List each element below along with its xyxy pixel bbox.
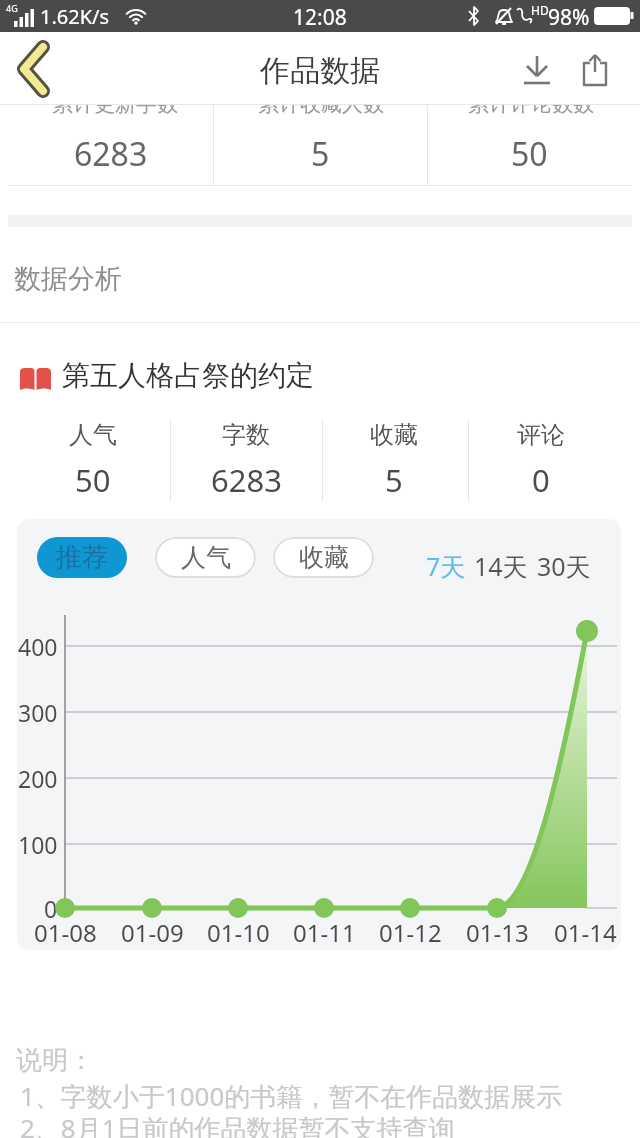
staticText: 6283: [74, 132, 148, 176]
staticText: 推荐: [56, 541, 108, 574]
staticText: 01-09: [121, 916, 184, 944]
staticText: 200: [18, 763, 58, 793]
staticText: 说明：: [16, 1044, 94, 1077]
staticText: 作品数据: [260, 52, 380, 90]
staticText: 12:08: [293, 3, 347, 32]
staticText: 2、8月1日前的作品数据暂不支持查询: [20, 1110, 455, 1138]
staticText: 累计评论数数: [468, 105, 594, 114]
staticText: 7天: [426, 549, 466, 583]
staticText: 数据分析: [14, 262, 122, 296]
staticText: 50: [75, 459, 111, 501]
staticText: 0: [44, 893, 58, 923]
staticText: 01-08: [34, 916, 97, 944]
button[interactable]: 人气: [155, 537, 256, 578]
staticText: 人气: [69, 420, 117, 450]
staticText: 评论: [517, 420, 565, 450]
staticText: 14天: [474, 549, 528, 583]
staticText: 累计收藏人数: [258, 105, 384, 114]
button[interactable]: 收藏: [273, 537, 374, 578]
button[interactable]: 推荐: [37, 537, 127, 578]
staticText: 0: [532, 459, 550, 501]
staticText: 98%: [548, 3, 590, 32]
staticText: 100: [18, 829, 58, 859]
staticText: 4G: [6, 2, 18, 14]
staticText: 5: [385, 459, 403, 501]
button[interactable]: [2, 38, 64, 100]
staticText: 01-14: [554, 916, 617, 944]
staticText: 收藏: [370, 420, 418, 450]
staticText: 累计更新字数: [52, 105, 178, 114]
staticText: 1、字数小于1000的书籍，暂不在作品数据展示: [20, 1078, 563, 1114]
staticText: 6283: [211, 459, 282, 501]
staticText: 30天: [537, 549, 591, 583]
button[interactable]: 第五人格占祭的约定: [0, 350, 640, 410]
staticText: 300: [18, 697, 58, 727]
staticText: 收藏: [299, 542, 349, 573]
staticText: 01-13: [466, 916, 529, 944]
staticText: 400: [18, 631, 58, 661]
staticText: 01-11: [293, 916, 356, 944]
staticText: 01-10: [207, 916, 270, 944]
staticText: 50: [511, 132, 548, 176]
staticText: 5: [311, 132, 330, 176]
staticText: 字数: [222, 420, 270, 450]
staticText: 1.62K/s: [40, 3, 110, 30]
staticText: 第五人格占祭的约定: [62, 358, 314, 393]
button[interactable]: [570, 46, 620, 96]
staticText: HD: [531, 2, 549, 18]
staticText: 01-12: [379, 916, 442, 944]
staticText: 人气: [181, 542, 231, 573]
button[interactable]: [512, 46, 562, 96]
